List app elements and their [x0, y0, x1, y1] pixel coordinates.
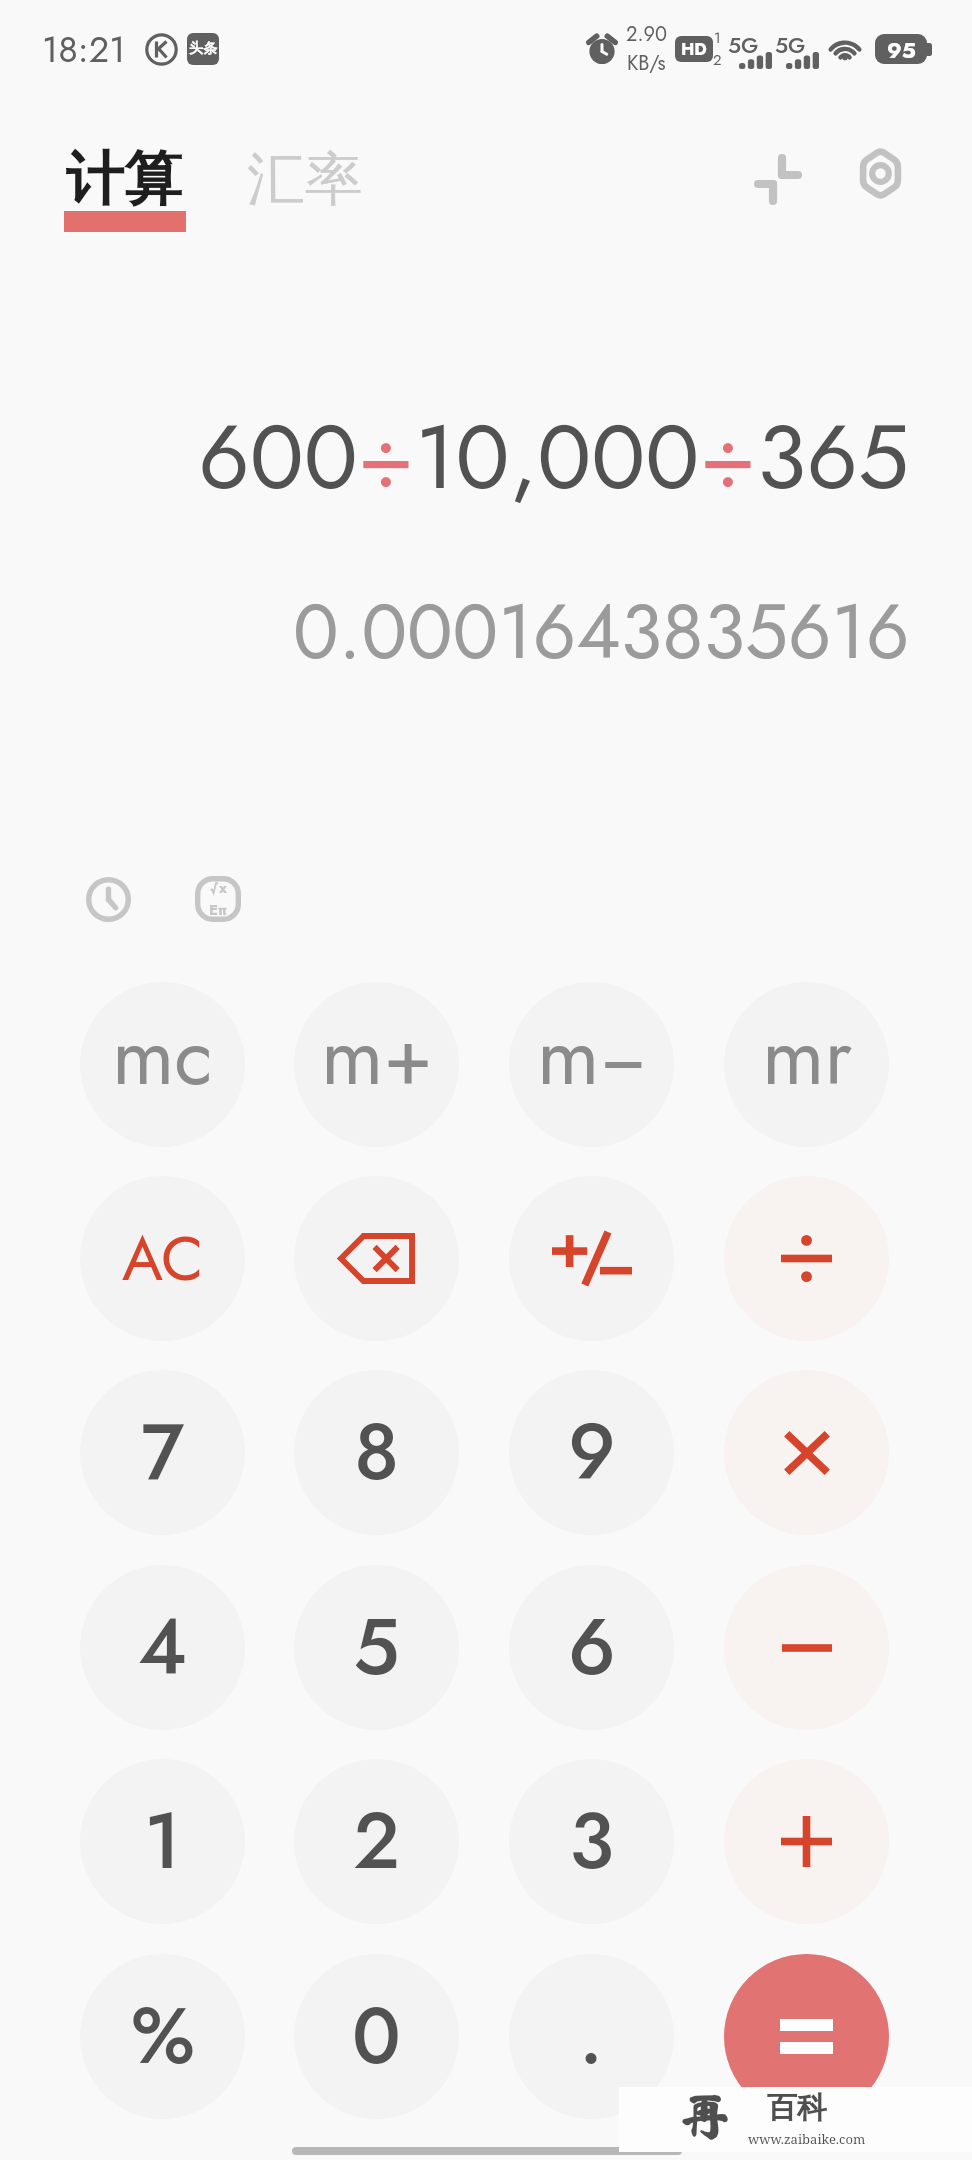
button[interactable]: mr [724, 982, 889, 1147]
button[interactable]: 1 [80, 1759, 245, 1924]
button[interactable]: 0 [294, 1954, 459, 2119]
button[interactable] [724, 1176, 889, 1341]
staticText: HD [681, 37, 707, 62]
button[interactable]: Plus minus [509, 1176, 674, 1341]
staticText: m− [537, 998, 647, 1114]
button[interactable]: m− [509, 982, 674, 1147]
staticText: mr [762, 998, 852, 1114]
staticText: www.zaibaike.com [748, 2130, 866, 2148]
staticText: 1 [714, 27, 721, 49]
button[interactable]: 8 [294, 1370, 459, 1535]
button[interactable] [724, 1370, 889, 1535]
staticText: KB/s [627, 49, 666, 78]
staticText: 2 [353, 1785, 401, 1898]
staticText: AC [122, 1214, 204, 1304]
button[interactable]: . [509, 1954, 674, 2119]
staticText: mc [112, 998, 213, 1114]
button[interactable]: mc [80, 982, 245, 1147]
staticText: 9 [568, 1396, 616, 1509]
staticText: 4 [138, 1591, 188, 1704]
staticText: 5G [775, 29, 806, 61]
staticText: 365 [757, 392, 909, 522]
staticText: 百科 [767, 2089, 827, 2127]
button[interactable]: Settings [835, 128, 925, 218]
staticText: % [131, 1980, 195, 2093]
staticText: 7 [141, 1396, 185, 1509]
button[interactable]: 5 [294, 1565, 459, 1730]
button[interactable]: 9 [509, 1370, 674, 1535]
button[interactable] [724, 1565, 889, 1730]
staticText: ÷ [358, 392, 415, 522]
button[interactable]: 汇率 [247, 143, 363, 216]
button[interactable]: Backspace [294, 1176, 459, 1341]
button[interactable]: History [66, 857, 150, 941]
staticText: 5G [728, 29, 759, 61]
button[interactable]: % [80, 1954, 245, 2119]
staticText: 3 [569, 1785, 614, 1898]
button[interactable]: Collapse keyboard [728, 130, 818, 220]
button[interactable]: AC [80, 1176, 245, 1341]
staticText: ÷ [700, 392, 757, 522]
other: Plus minus [552, 1232, 632, 1285]
staticText: 汇率 [247, 143, 363, 216]
staticText: m+ [321, 998, 433, 1114]
button[interactable]: m+ [294, 982, 459, 1147]
staticText: 95 [887, 34, 916, 64]
staticText: . [579, 1980, 604, 2093]
staticText: 计算 [66, 143, 182, 216]
staticText: 10,000 [415, 392, 700, 522]
staticText: 2.90 [626, 20, 667, 49]
button[interactable]: Equals [724, 1954, 889, 2119]
staticText: 600 [198, 392, 358, 522]
other: Backspace [338, 1233, 415, 1284]
staticText: 18:21 [42, 23, 126, 75]
other: Equals [780, 2019, 833, 2054]
staticText: 6 [568, 1591, 616, 1704]
button[interactable]: 2 [294, 1759, 459, 1924]
staticText: √x [210, 877, 227, 899]
staticText: 再 [679, 2092, 729, 2142]
button[interactable]: 计算 [60, 130, 190, 235]
staticText: 8 [354, 1396, 400, 1509]
button[interactable]: 7 [80, 1370, 245, 1535]
button[interactable] [724, 1759, 889, 1924]
staticText: 头条 [189, 40, 217, 58]
staticText: 2 [713, 49, 722, 71]
staticText: Eπ [209, 899, 228, 921]
button[interactable]: 3 [509, 1759, 674, 1924]
button[interactable]: Scientific calculator [176, 857, 260, 941]
button[interactable]: 6 [509, 1565, 674, 1730]
staticText: 0.0001643835616 [293, 577, 910, 687]
button[interactable]: 4 [80, 1565, 245, 1730]
staticText: 0 [352, 1980, 401, 2093]
staticText: 1 [144, 1785, 181, 1898]
staticText: 5 [353, 1591, 400, 1704]
